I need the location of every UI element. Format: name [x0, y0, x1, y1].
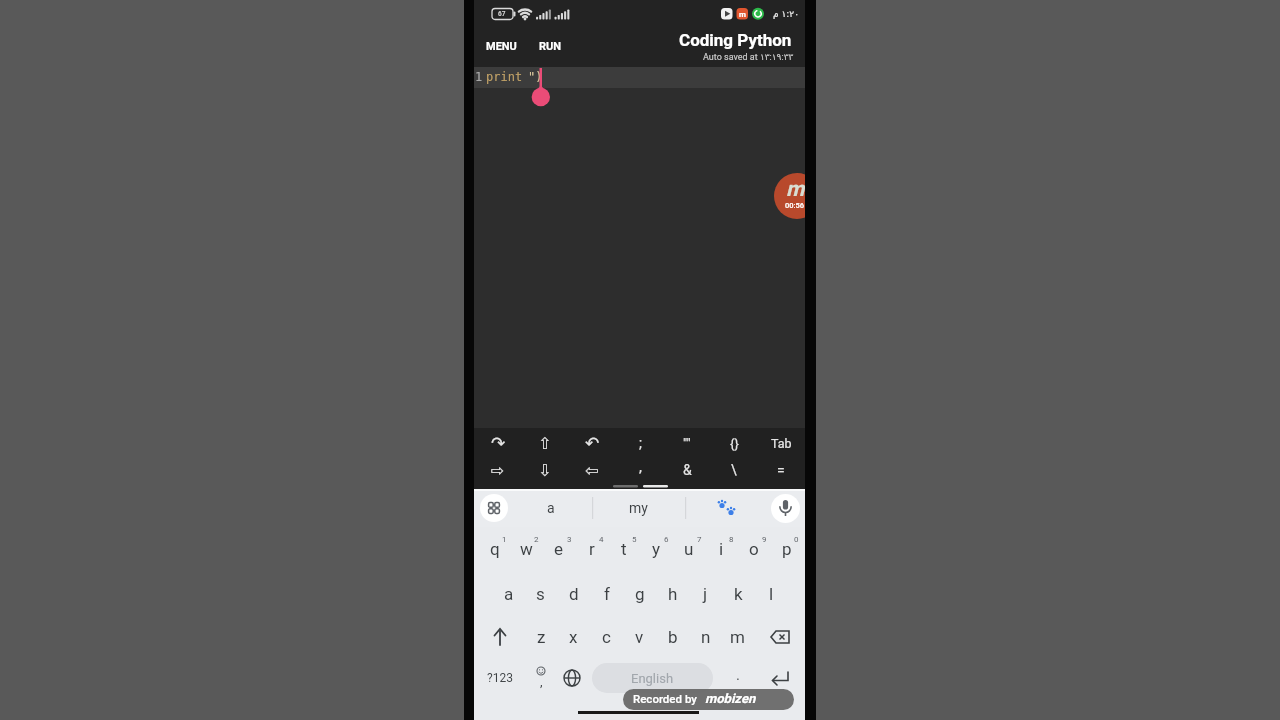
staticText: x	[569, 627, 578, 647]
button[interactable]: y	[640, 532, 673, 566]
button[interactable]	[763, 620, 797, 654]
button[interactable]: u	[672, 532, 705, 566]
button[interactable]: Tab	[758, 428, 804, 458]
button[interactable]: m	[721, 620, 754, 654]
button[interactable]: MENU	[474, 31, 531, 61]
button[interactable]: my	[608, 493, 668, 523]
button[interactable]	[556, 661, 588, 695]
button[interactable]: l	[755, 577, 788, 611]
button[interactable]: ↶	[569, 428, 615, 458]
button[interactable]: r	[575, 532, 608, 566]
staticText: ↶	[585, 433, 600, 453]
staticText: ""	[683, 436, 691, 451]
button[interactable]: m	[774, 173, 805, 219]
button[interactable]: t	[607, 532, 640, 566]
staticText: d	[569, 584, 579, 604]
button[interactable]: k	[722, 577, 755, 611]
button[interactable]: h	[656, 577, 689, 611]
staticText: MENU	[486, 40, 517, 53]
button[interactable]: English	[592, 663, 713, 693]
button[interactable]: p	[770, 532, 803, 566]
staticText: f	[604, 584, 610, 604]
staticText: m	[730, 627, 745, 647]
button[interactable]: ⇨	[475, 455, 521, 485]
button[interactable]	[474, 67, 805, 88]
staticText: ;	[639, 435, 642, 451]
staticText: ")	[528, 70, 543, 84]
button[interactable]: z	[525, 620, 558, 654]
button[interactable]	[484, 620, 516, 654]
staticText: 67	[498, 10, 506, 18]
staticText: 7	[697, 535, 702, 544]
staticText: mobizen	[705, 691, 756, 706]
button[interactable]: a	[492, 577, 525, 611]
button[interactable]: n	[689, 620, 722, 654]
button[interactable]: g	[623, 577, 656, 611]
button[interactable]: &	[664, 455, 710, 485]
staticText: p	[782, 539, 792, 559]
button[interactable]: d	[557, 577, 590, 611]
staticText: v	[635, 627, 644, 647]
staticText: c	[602, 627, 611, 647]
button[interactable]: e	[542, 532, 575, 566]
staticText: 1	[475, 70, 483, 84]
staticText: n	[701, 627, 711, 647]
staticText: Recorded by	[633, 692, 697, 705]
staticText: 4	[599, 535, 604, 544]
button[interactable]: i	[705, 532, 738, 566]
staticText: 8	[729, 535, 734, 544]
staticText: t	[621, 539, 627, 559]
button[interactable]: q	[478, 532, 511, 566]
button[interactable]: ?123	[480, 661, 520, 695]
button[interactable]: ⇦	[569, 455, 615, 485]
button[interactable]: a	[521, 493, 581, 523]
button[interactable]: ""	[664, 428, 710, 458]
button[interactable]: RUN	[520, 31, 580, 61]
button[interactable]: s	[524, 577, 557, 611]
button[interactable]	[525, 661, 557, 695]
button[interactable]	[480, 494, 508, 522]
button[interactable]: ⇧	[522, 428, 568, 458]
staticText: a	[504, 584, 514, 604]
staticText: ⇧	[538, 434, 552, 453]
staticText: u	[684, 539, 694, 559]
button[interactable]: =	[758, 455, 804, 485]
staticText: w	[520, 539, 533, 559]
staticText: i	[719, 539, 724, 559]
button[interactable]: \	[711, 455, 757, 485]
staticText: 9	[762, 535, 767, 544]
button[interactable]: v	[623, 620, 656, 654]
button[interactable]: ;	[617, 428, 663, 458]
staticText: print	[486, 70, 523, 84]
staticText: .	[736, 666, 740, 684]
staticText: 00:56	[785, 201, 805, 210]
staticText: r	[589, 539, 595, 559]
staticText: &	[683, 462, 692, 478]
staticText: z	[537, 627, 546, 647]
button[interactable]: o	[737, 532, 770, 566]
staticText: k	[734, 584, 743, 604]
button[interactable]	[771, 494, 800, 523]
staticText: \	[731, 462, 737, 478]
button[interactable]: c	[590, 620, 623, 654]
staticText: j	[703, 584, 708, 604]
staticText: {}	[730, 436, 739, 451]
button[interactable]: w	[510, 532, 543, 566]
button[interactable]: ↷	[475, 428, 521, 458]
button[interactable]	[763, 661, 797, 695]
staticText: y	[652, 539, 661, 559]
button[interactable]: j	[689, 577, 722, 611]
staticText: ١:٢٠ م	[773, 9, 799, 19]
staticText: 5	[632, 535, 637, 544]
button[interactable]: .	[723, 658, 753, 692]
staticText: ,	[540, 674, 543, 689]
staticText: a	[547, 500, 555, 516]
button[interactable]: b	[656, 620, 689, 654]
button[interactable]: ⇩	[522, 455, 568, 485]
button[interactable]: x	[557, 620, 590, 654]
staticText: e	[554, 539, 564, 559]
button[interactable]: f	[590, 577, 623, 611]
button[interactable]: ,	[617, 452, 663, 482]
staticText: 2	[534, 535, 539, 544]
button[interactable]: {}	[711, 428, 757, 458]
